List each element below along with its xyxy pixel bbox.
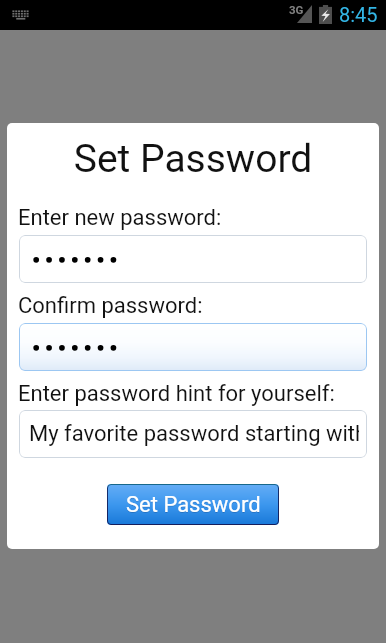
button[interactable]: New password field xyxy=(19,235,367,283)
button[interactable]: Set Password xyxy=(107,484,279,525)
staticText: Set Password xyxy=(126,493,261,519)
staticText: Confirm password: xyxy=(18,293,203,319)
staticText: 3G xyxy=(289,3,304,16)
staticText: Enter new password: xyxy=(18,205,222,231)
staticText: My favorite password starting with xyxy=(29,421,359,447)
button[interactable]: My favorite password starting with xyxy=(19,410,367,458)
staticText: 8:45 xyxy=(339,3,378,26)
button[interactable]: Confirm password field xyxy=(19,323,367,371)
staticText: Set Password xyxy=(126,492,261,518)
staticText: Set Password xyxy=(7,136,379,182)
staticText: Enter password hint for yourself: xyxy=(18,381,335,407)
other: Keyboard xyxy=(12,10,29,20)
